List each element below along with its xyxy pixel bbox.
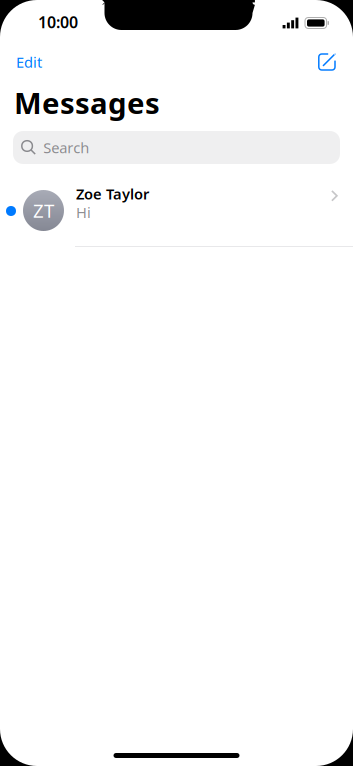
button[interactable]: Compose [306, 43, 353, 81]
button[interactable]: Search [13, 131, 340, 164]
staticText: Hi [76, 202, 91, 222]
staticText: Zoe Taylor [76, 184, 149, 203]
button[interactable]: Edit [0, 42, 54, 82]
staticText: Search [43, 138, 89, 157]
staticText: Edit [16, 52, 42, 72]
button[interactable]: ZT [0, 190, 353, 247]
staticText: ZT [33, 198, 54, 223]
staticText: Messages [14, 83, 160, 122]
staticText: 10:00 [38, 11, 78, 33]
